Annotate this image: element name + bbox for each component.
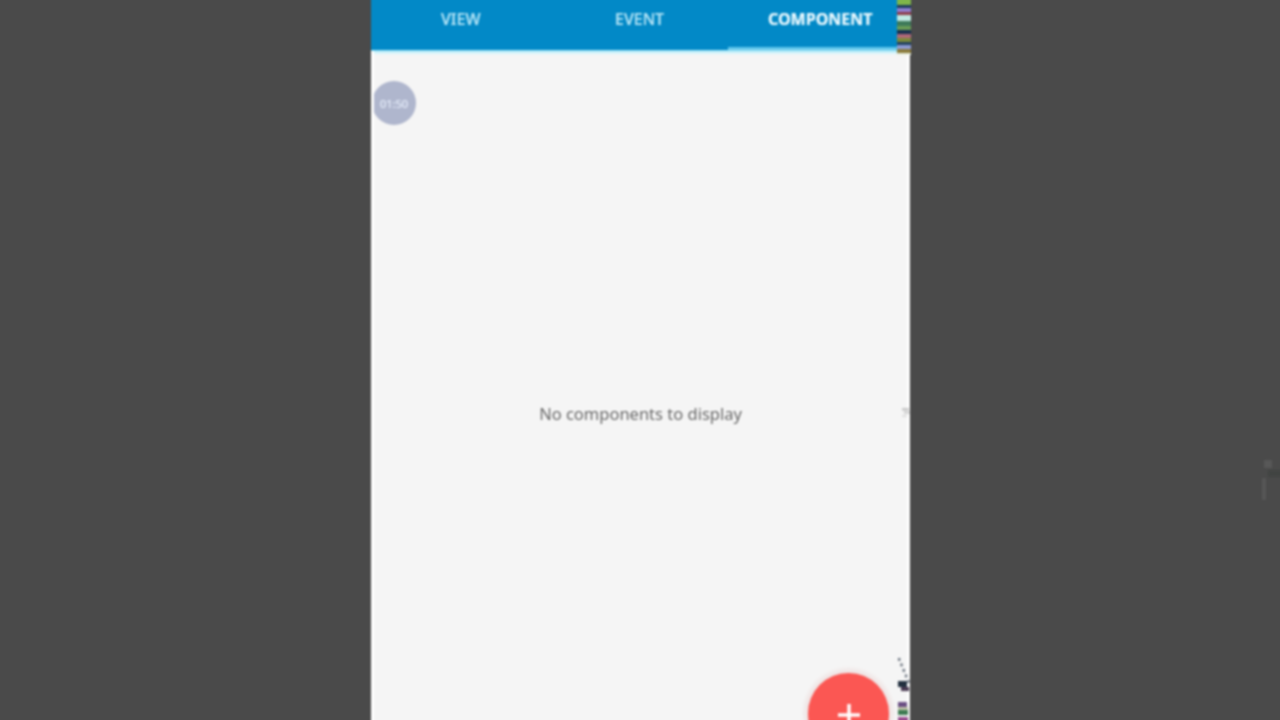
staticText: EVENT [615, 8, 665, 30]
button[interactable]: COMPONENT [730, 0, 910, 51]
button[interactable]: Add component [808, 673, 889, 720]
button[interactable]: VIEW [371, 0, 550, 51]
staticText: No components to display [539, 402, 742, 424]
staticText: VIEW [441, 8, 481, 30]
button[interactable]: EVENT [550, 0, 730, 51]
staticText: 01:50 [380, 96, 409, 111]
staticText: COMPONENT [768, 8, 873, 30]
